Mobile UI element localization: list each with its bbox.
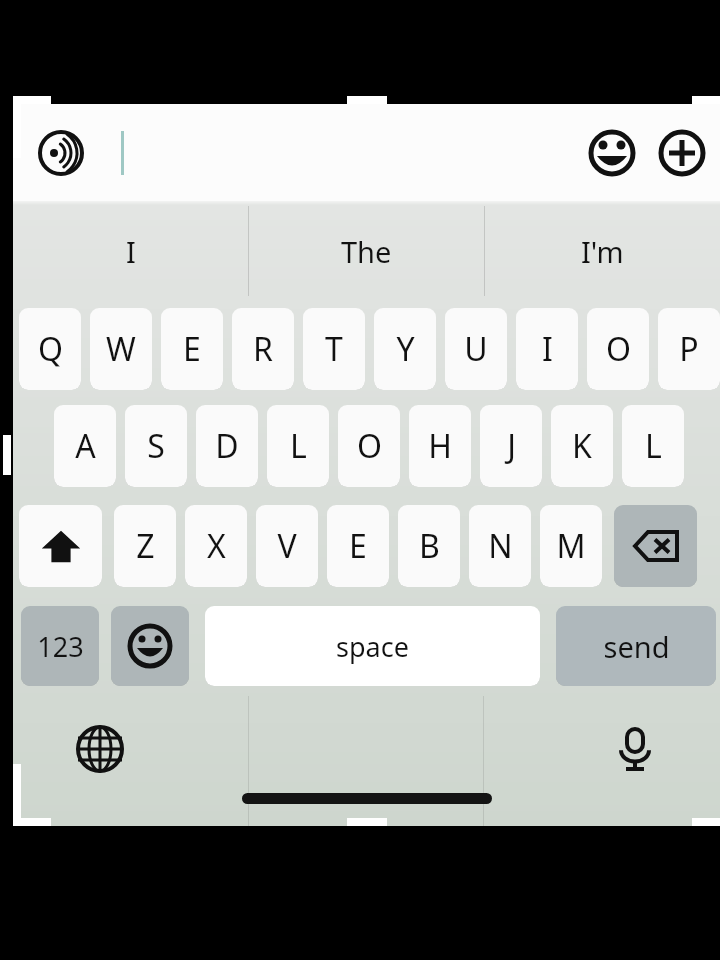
staticText: A [75, 424, 96, 468]
button[interactable]: I [516, 308, 578, 390]
staticText: The [341, 232, 392, 271]
button[interactable]: U [445, 308, 507, 390]
staticText: W [106, 327, 136, 371]
staticText: X [207, 524, 226, 568]
button[interactable]: space [205, 606, 540, 686]
button[interactable]: 123 [21, 606, 99, 686]
staticText: P [679, 327, 699, 371]
staticText: U [464, 327, 488, 371]
button[interactable]: L [267, 405, 329, 487]
button[interactable]: B [398, 505, 460, 587]
button[interactable]: A [54, 405, 116, 487]
staticText: Z [136, 524, 155, 568]
button[interactable]: Change language [75, 724, 125, 774]
button[interactable]: L [622, 405, 684, 487]
button[interactable]: send [556, 606, 716, 686]
staticText: I [126, 232, 136, 271]
button[interactable]: Q [19, 308, 81, 390]
button[interactable]: Z [114, 505, 176, 587]
staticText: K [572, 424, 592, 468]
button[interactable]: I'm [484, 201, 720, 301]
button[interactable]: The [248, 201, 484, 301]
staticText: B [419, 524, 440, 568]
staticText: 123 [37, 628, 84, 665]
staticText: S [147, 424, 165, 468]
staticText: L [290, 424, 307, 468]
button[interactable]: T [303, 308, 365, 390]
button[interactable]: O [587, 308, 649, 390]
staticText: I [542, 327, 553, 371]
staticText: V [277, 524, 297, 568]
staticText: E [349, 524, 367, 568]
button[interactable]: M [540, 505, 602, 587]
staticText: I'm [581, 232, 624, 271]
staticText: space [336, 628, 409, 665]
staticText: H [428, 424, 452, 468]
button[interactable]: S [125, 405, 187, 487]
staticText: Q [38, 327, 63, 371]
button[interactable]: Shift [19, 505, 102, 587]
button[interactable]: Emoji [588, 129, 636, 177]
staticText: O [357, 424, 382, 468]
button[interactable]: W [90, 308, 152, 390]
button[interactable]: V [256, 505, 318, 587]
button[interactable]: R [232, 308, 294, 390]
staticText: T [325, 327, 343, 371]
button[interactable]: I [13, 201, 248, 301]
staticText: Y [396, 327, 415, 371]
button[interactable]: P [658, 308, 720, 390]
button[interactable]: Y [374, 308, 436, 390]
staticText: L [645, 424, 662, 468]
button[interactable]: Emoji keyboard [111, 606, 189, 686]
button[interactable]: E [161, 308, 223, 390]
staticText: N [488, 524, 513, 568]
button[interactable]: N [469, 505, 531, 587]
button[interactable]: J [480, 405, 542, 487]
button[interactable]: X [185, 505, 247, 587]
staticText: O [606, 327, 631, 371]
staticText: M [556, 524, 586, 568]
button[interactable]: D [196, 405, 258, 487]
button[interactable]: E [327, 505, 389, 587]
staticText: send [603, 627, 670, 666]
staticText: D [215, 424, 239, 468]
button[interactable]: Add [658, 129, 706, 177]
button[interactable]: Voice input [38, 130, 84, 176]
button[interactable]: K [551, 405, 613, 487]
button[interactable]: Voice typing [610, 724, 660, 774]
staticText: E [183, 327, 201, 371]
button[interactable]: O [338, 405, 400, 487]
button[interactable]: Backspace [614, 505, 697, 587]
button[interactable]: H [409, 405, 471, 487]
staticText: R [253, 327, 273, 371]
staticText: J [507, 424, 516, 468]
